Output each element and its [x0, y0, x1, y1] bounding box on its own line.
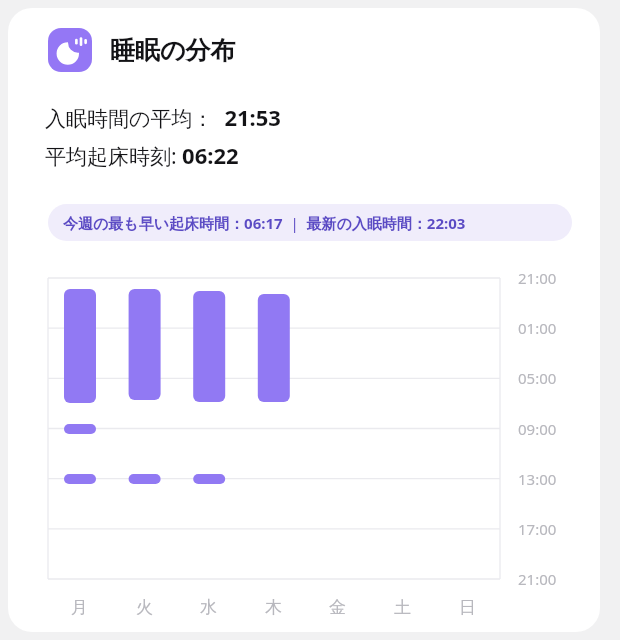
button[interactable]: Sleep distribution: [48, 27, 238, 73]
staticText: 月: [71, 597, 88, 618]
staticText: 日: [459, 597, 476, 618]
other: Sleep distribution: [48, 28, 92, 72]
staticText: 木: [265, 597, 282, 618]
staticText: 土: [394, 597, 411, 618]
staticText: 金: [329, 597, 346, 618]
staticText: 入眠時間の平均： 21:53: [45, 102, 281, 132]
staticText: 13:00: [518, 469, 557, 489]
button[interactable]: 今週の最も早い起床時間：06:17 | 最新の入眠時間：22:03: [48, 204, 572, 241]
staticText: 21:00: [518, 268, 557, 288]
staticText: 09:00: [518, 419, 557, 439]
staticText: 17:00: [518, 519, 557, 539]
staticText: 01:00: [518, 318, 557, 338]
staticText: 水: [200, 597, 217, 618]
staticText: 火: [136, 597, 153, 618]
staticText: 05:00: [518, 368, 557, 388]
staticText: 今週の最も早い起床時間：06:17 | 最新の入眠時間：22:03: [63, 213, 466, 233]
staticText: 睡眠の分布: [110, 35, 236, 66]
staticText: 21:00: [518, 569, 557, 589]
staticText: 平均起床時刻: 06:22: [45, 140, 239, 170]
